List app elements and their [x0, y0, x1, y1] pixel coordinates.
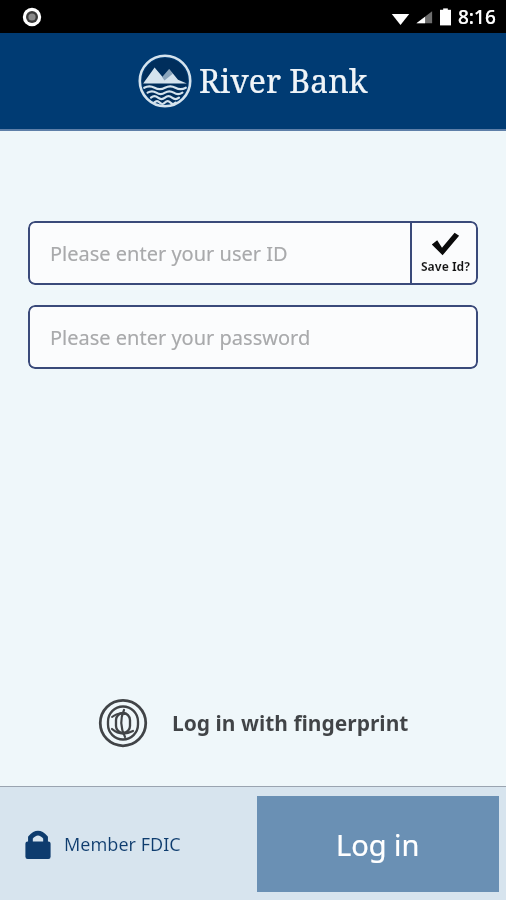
staticText: Log in with fingerprint: [172, 709, 409, 738]
staticText: Log in: [336, 825, 420, 864]
staticText: Please enter your password: [50, 324, 311, 351]
staticText: Please enter your user ID: [50, 240, 288, 267]
staticText: River Bank: [199, 59, 368, 103]
button[interactable]: Log in with fingerprint: [60, 698, 446, 748]
staticText: 8:16: [458, 4, 496, 30]
button[interactable]: Log in: [257, 796, 499, 892]
staticText: Member FDIC: [64, 832, 181, 857]
button[interactable]: Please enter your password: [28, 305, 478, 369]
button[interactable]: Save Id: [412, 221, 478, 285]
staticText: Save Id?: [421, 258, 470, 274]
button[interactable]: Please enter your user ID: [28, 221, 410, 285]
button[interactable]: Member FDIC: [24, 828, 181, 860]
